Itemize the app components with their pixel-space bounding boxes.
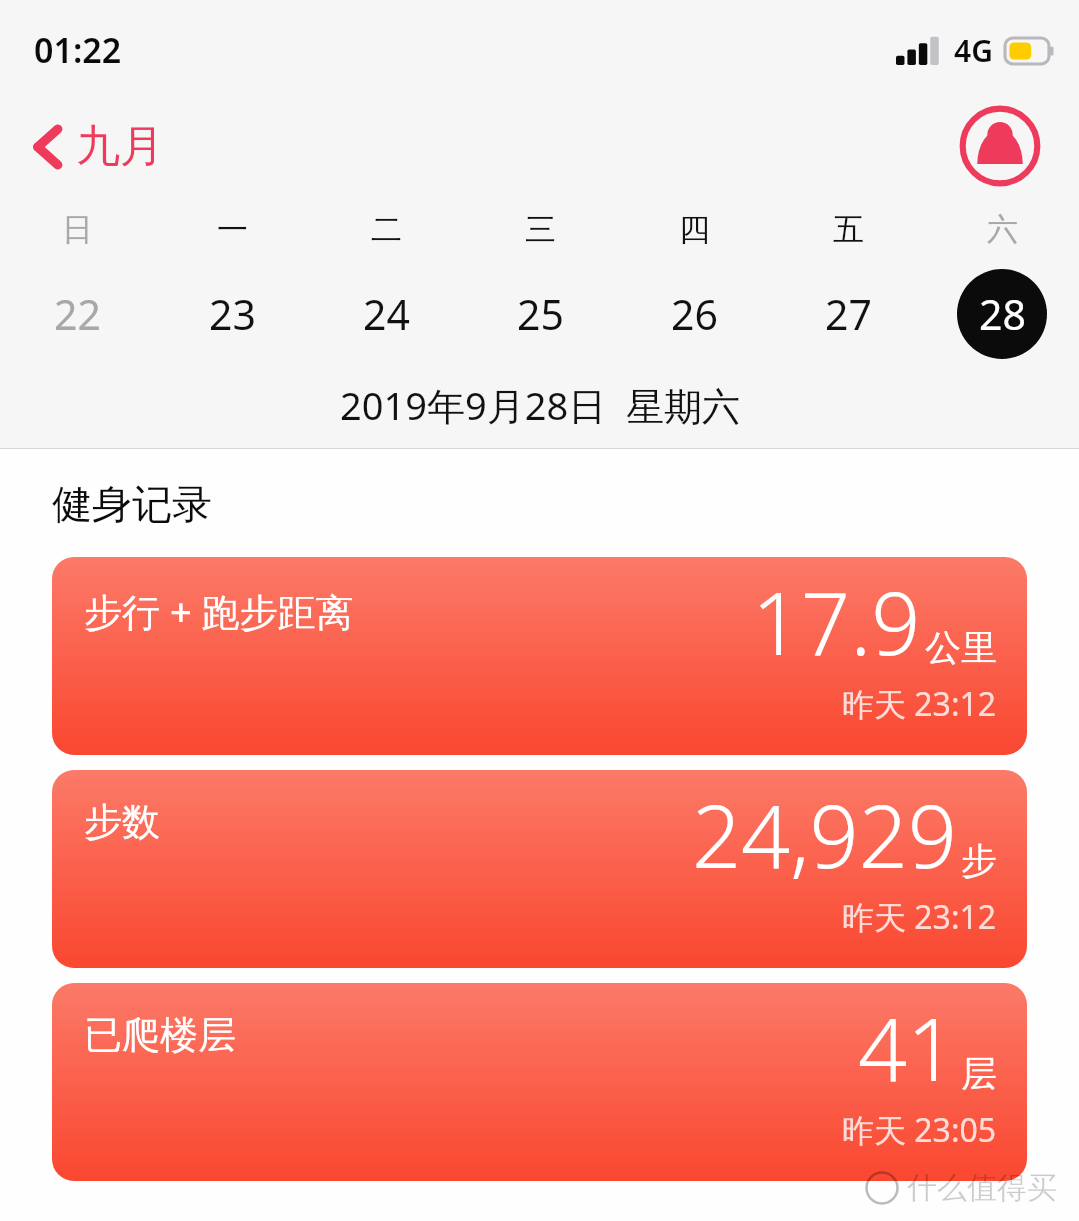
staticText: 步数	[84, 798, 160, 846]
button[interactable]: Profile	[959, 105, 1041, 187]
staticText: 一	[217, 210, 248, 249]
staticText: 九月	[76, 119, 164, 174]
button[interactable]: 23	[155, 266, 309, 362]
staticText: 健身记录	[52, 479, 212, 529]
staticText: 昨天 23:05	[842, 1108, 997, 1152]
staticText: 昨天 23:12	[842, 682, 997, 726]
staticText: 41	[858, 989, 957, 1106]
staticText: 日	[62, 210, 93, 249]
staticText: 步行 + 跑步距离	[84, 585, 354, 637]
staticText: 23	[209, 286, 256, 342]
staticText: 三	[525, 210, 556, 249]
staticText: 28	[979, 286, 1026, 342]
staticText: 公里	[925, 625, 997, 670]
staticText: 27	[825, 286, 872, 342]
staticText: 二	[371, 210, 402, 249]
button[interactable]: 步数	[52, 770, 1027, 968]
staticText: 步	[961, 838, 997, 883]
staticText: 17.9	[752, 563, 921, 680]
staticText: 什么值得买	[907, 1169, 1057, 1207]
staticText: 26	[671, 286, 718, 342]
staticText: 层	[961, 1051, 997, 1096]
staticText: 五	[833, 210, 864, 249]
staticText: 4G	[954, 30, 993, 71]
button[interactable]: 28	[925, 266, 1079, 362]
staticText: 昨天 23:12	[842, 895, 997, 939]
staticText: 22	[54, 286, 101, 342]
button[interactable]: 27	[771, 266, 925, 362]
staticText: 24,929	[692, 776, 957, 893]
staticText: 01:22	[34, 27, 122, 73]
button[interactable]: 已爬楼层	[52, 983, 1027, 1181]
button[interactable]: 24	[309, 266, 463, 362]
staticText: 六	[987, 210, 1018, 249]
staticText: 25	[517, 286, 564, 342]
button[interactable]: 25	[463, 266, 617, 362]
button[interactable]: 步行 + 跑步距离	[52, 557, 1027, 755]
staticText: 已爬楼层	[84, 1011, 236, 1059]
button[interactable]: 26	[617, 266, 771, 362]
staticText: 24	[363, 286, 410, 342]
button[interactable]: 22	[0, 266, 155, 362]
button[interactable]: 九月	[24, 113, 172, 180]
staticText: 2019年9月28日 星期六	[340, 379, 740, 431]
staticText: 四	[679, 210, 710, 249]
